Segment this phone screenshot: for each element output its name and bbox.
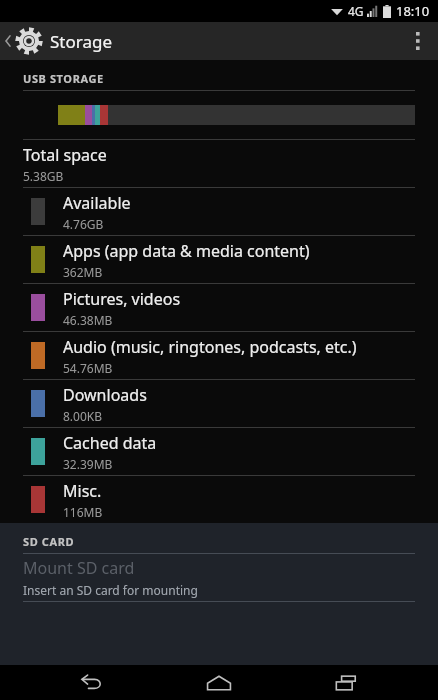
staticText: 8.00KB bbox=[63, 408, 103, 424]
staticText: Audio (music, ringtones, podcasts, etc.) bbox=[63, 336, 357, 358]
button[interactable]: Cached data bbox=[0, 428, 438, 475]
button[interactable]: Back bbox=[57, 665, 127, 700]
staticText: 54.76MB bbox=[63, 360, 113, 376]
button[interactable]: Navigate up bbox=[0, 22, 52, 60]
staticText: Storage bbox=[50, 30, 113, 53]
staticText: USB STORAGE bbox=[23, 71, 104, 86]
staticText: 18:10 bbox=[396, 2, 430, 20]
staticText: Misc. bbox=[63, 480, 102, 502]
button[interactable]: Mount SD card bbox=[0, 554, 438, 601]
button[interactable]: Downloads bbox=[0, 380, 438, 427]
button[interactable]: Recent apps bbox=[311, 665, 381, 700]
staticText: Insert an SD card for mounting bbox=[23, 582, 198, 598]
staticText: 4G bbox=[348, 3, 364, 19]
staticText: Pictures, videos bbox=[63, 288, 181, 310]
button[interactable]: Apps (app data & media content) bbox=[0, 236, 438, 283]
staticText: Apps (app data & media content) bbox=[63, 240, 310, 262]
staticText: Cached data bbox=[63, 432, 157, 454]
staticText: 46.38MB bbox=[63, 312, 113, 328]
staticText: Available bbox=[63, 192, 131, 214]
staticText: Total space bbox=[23, 144, 107, 166]
staticText: Downloads bbox=[63, 384, 147, 406]
staticText: SD CARD bbox=[23, 534, 75, 549]
button[interactable]: Available bbox=[0, 188, 438, 235]
staticText: 362MB bbox=[63, 264, 103, 280]
staticText: 32.39MB bbox=[63, 456, 113, 472]
staticText: 4.76GB bbox=[63, 216, 104, 232]
staticText: Mount SD card bbox=[23, 557, 135, 579]
button[interactable]: More options bbox=[398, 22, 438, 60]
button[interactable]: Audio (music, ringtones, podcasts, etc.) bbox=[0, 332, 438, 379]
button[interactable]: Home bbox=[184, 665, 254, 700]
button[interactable]: Misc. bbox=[0, 476, 438, 523]
staticText: 5.38GB bbox=[23, 168, 64, 184]
button[interactable]: Total space bbox=[0, 140, 438, 187]
staticText: 116MB bbox=[63, 504, 103, 520]
button[interactable]: Pictures, videos bbox=[0, 284, 438, 331]
